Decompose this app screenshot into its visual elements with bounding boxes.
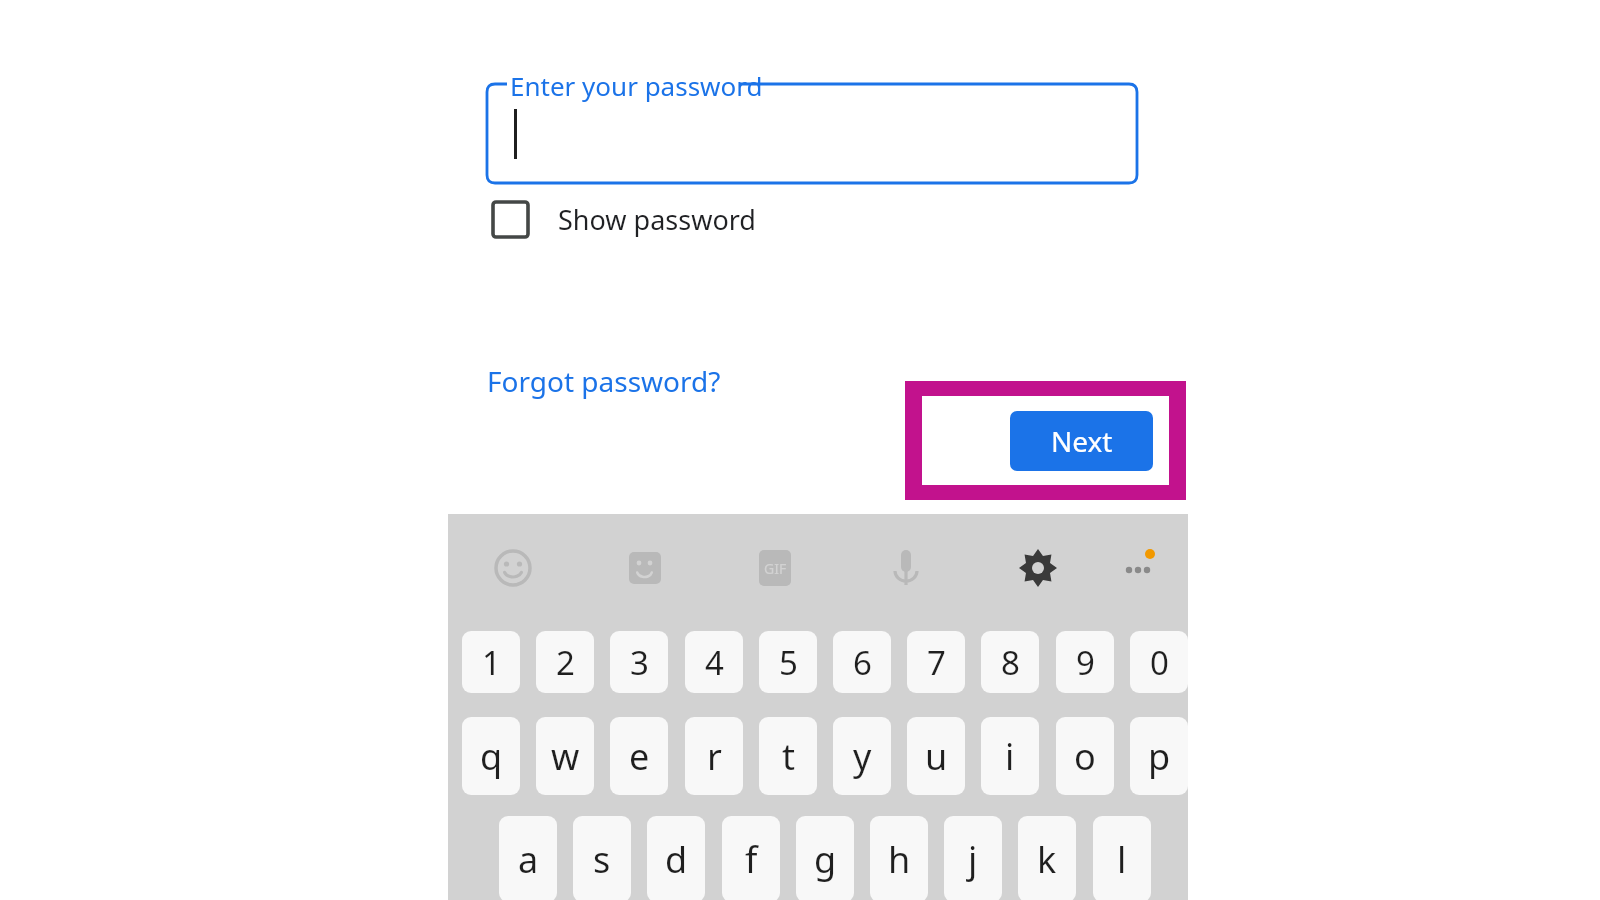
button[interactable]: More options <box>1108 538 1168 598</box>
button[interactable]: k <box>1018 816 1076 900</box>
staticText: t <box>782 732 795 781</box>
staticText: Enter your password <box>510 68 763 103</box>
staticText: a <box>518 835 539 884</box>
button[interactable]: g <box>796 816 854 900</box>
button[interactable]: w <box>536 717 594 795</box>
staticText: g <box>814 835 837 884</box>
button[interactable]: j <box>944 816 1002 900</box>
staticText: 1 <box>482 640 501 685</box>
button[interactable]: Emoji <box>483 538 543 598</box>
button[interactable]: d <box>647 816 705 900</box>
staticText: Forgot password? <box>487 362 721 400</box>
button[interactable]: i <box>981 717 1039 795</box>
staticText: d <box>665 835 688 884</box>
button[interactable]: 6 <box>833 631 891 693</box>
button[interactable]: Voice input <box>876 538 936 598</box>
button[interactable]: y <box>833 717 891 795</box>
staticText: 8 <box>1001 640 1020 685</box>
button[interactable]: f <box>722 816 780 900</box>
staticText: j <box>968 835 978 884</box>
button[interactable]: h <box>870 816 928 900</box>
button[interactable]: Forgot password? <box>470 358 740 404</box>
staticText: l <box>1117 835 1127 884</box>
staticText: 2 <box>556 640 575 685</box>
button[interactable]: l <box>1093 816 1151 900</box>
staticText: k <box>1037 835 1057 884</box>
staticText: 7 <box>927 640 946 685</box>
button[interactable]: GIF <box>745 538 805 598</box>
button[interactable]: r <box>685 717 743 795</box>
staticText: Show password <box>558 201 756 238</box>
staticText: w <box>551 732 580 781</box>
button[interactable]: 9 <box>1056 631 1114 693</box>
staticText: 9 <box>1076 640 1095 685</box>
staticText: o <box>1074 732 1096 781</box>
staticText: p <box>1148 732 1171 781</box>
button[interactable]: 0 <box>1130 631 1188 693</box>
staticText: GIF <box>764 559 787 578</box>
staticText: 5 <box>779 640 798 685</box>
button[interactable]: e <box>610 717 668 795</box>
button[interactable]: 8 <box>981 631 1039 693</box>
button[interactable]: 7 <box>907 631 965 693</box>
staticText: i <box>1005 732 1015 781</box>
button[interactable] <box>487 84 1137 183</box>
button[interactable]: a <box>499 816 557 900</box>
button[interactable]: u <box>907 717 965 795</box>
button[interactable]: o <box>1056 717 1114 795</box>
staticText: Next <box>1051 422 1113 460</box>
staticText: h <box>888 835 911 884</box>
button[interactable]: Settings <box>1008 538 1068 598</box>
button[interactable]: Show password <box>478 190 798 248</box>
staticText: 0 <box>1150 640 1169 685</box>
button[interactable]: q <box>462 717 520 795</box>
staticText: f <box>745 835 758 884</box>
button[interactable]: 1 <box>462 631 520 693</box>
staticText: q <box>480 732 503 781</box>
staticText: u <box>925 732 948 781</box>
button[interactable]: Stickers <box>615 538 675 598</box>
button[interactable]: Next <box>1010 411 1153 471</box>
staticText: s <box>593 835 611 884</box>
button[interactable]: s <box>573 816 631 900</box>
button[interactable]: 3 <box>610 631 668 693</box>
button[interactable]: 4 <box>685 631 743 693</box>
staticText: y <box>853 732 872 781</box>
staticText: r <box>707 732 722 781</box>
staticText: 4 <box>705 640 724 685</box>
staticText: e <box>629 732 650 781</box>
button[interactable]: p <box>1130 717 1188 795</box>
staticText: 3 <box>630 640 649 685</box>
button[interactable]: 2 <box>536 631 594 693</box>
button[interactable]: 5 <box>759 631 817 693</box>
button[interactable]: t <box>759 717 817 795</box>
staticText: 6 <box>853 640 872 685</box>
